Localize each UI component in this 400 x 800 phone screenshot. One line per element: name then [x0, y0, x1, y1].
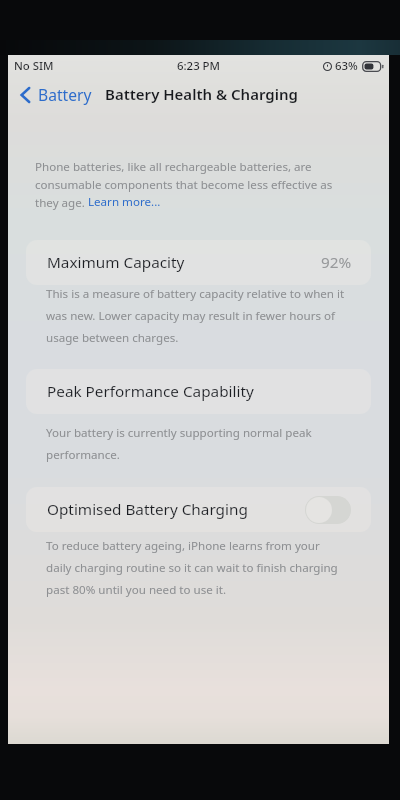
staticText: 92% — [321, 252, 352, 273]
staticText: Phone batteries, like all rechargeable b… — [35, 159, 333, 210]
staticText: Optimised Battery Charging — [47, 499, 248, 520]
button[interactable]: Learn more... — [88, 194, 161, 210]
staticText: Maximum Capacity — [47, 252, 185, 273]
staticText: Battery — [38, 84, 92, 105]
staticText: Battery Health & Charging — [105, 84, 298, 104]
button[interactable]: Optimised Battery Charging — [26, 487, 371, 532]
staticText: To reduce battery ageing, iPhone learns … — [46, 538, 338, 597]
button[interactable]: Peak Performance Capability — [26, 369, 371, 414]
button[interactable]: Maximum Capacity — [26, 240, 371, 285]
staticText: This is a measure of battery capacity re… — [46, 286, 345, 345]
button[interactable]: Battery — [20, 84, 92, 105]
staticText: No SIM — [14, 58, 54, 74]
staticText: 63% — [335, 58, 358, 74]
staticText: Your battery is currently supporting nor… — [46, 425, 312, 462]
staticText: 6:23 PM — [177, 58, 221, 74]
staticText: Peak Performance Capability — [47, 381, 254, 402]
button[interactable]: Optimised Battery Charging toggle — [305, 496, 351, 524]
